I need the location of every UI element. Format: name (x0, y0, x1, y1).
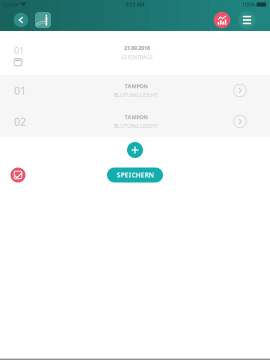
staticText: TAMPON (124, 82, 147, 90)
button[interactable]: 02 (0, 106, 270, 137)
staticText: SPEICHERN (116, 171, 153, 179)
staticText: 21.09.2016 (124, 44, 150, 51)
staticText: 02 EINTRÄGE (121, 54, 153, 61)
button[interactable]: Statistics (212, 10, 232, 30)
staticText: 02 (14, 114, 26, 129)
button[interactable]: 01 (0, 75, 270, 106)
staticText: BLUTUNG LEICHT (114, 122, 158, 129)
staticText: 100% (242, 1, 255, 8)
staticText: Carrier (3, 1, 19, 8)
button[interactable]: Profile (33, 10, 53, 30)
staticText: 9:53 AM (125, 1, 144, 8)
staticText: TAMPON (124, 113, 147, 121)
button[interactable]: Back (12, 10, 30, 30)
button[interactable]: SPEICHERN (107, 167, 163, 182)
staticText: 01 (14, 44, 24, 56)
button[interactable]: Menu (237, 10, 257, 30)
button[interactable]: Confirm (5, 165, 31, 185)
button[interactable]: Add entry (122, 139, 148, 161)
staticText: 01 (14, 83, 26, 98)
staticText: BLUTUNG LEICHT (114, 91, 158, 98)
